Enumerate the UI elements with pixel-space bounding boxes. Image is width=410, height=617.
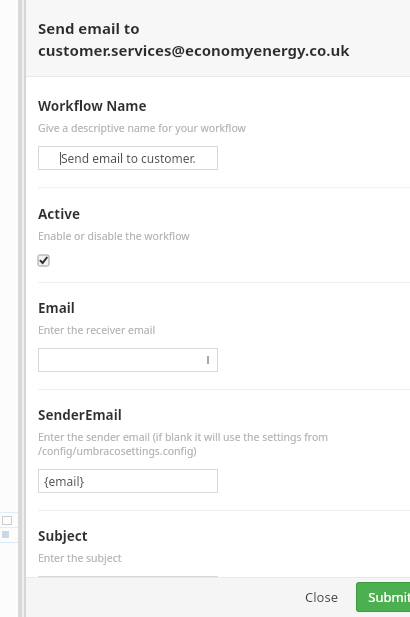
staticText: SenderEmail: [38, 406, 122, 424]
button[interactable]: Send email to customer.: [38, 146, 218, 170]
button[interactable]: Active checkbox: [38, 255, 49, 266]
button[interactable]: Close: [295, 582, 348, 612]
staticText: Send email to customer.: [61, 150, 196, 166]
staticText: Submit: [368, 588, 410, 606]
button[interactable]: {email}: [38, 469, 218, 493]
button[interactable]: [38, 348, 218, 372]
staticText: Enable or disable the workflow: [38, 229, 190, 243]
staticText: Enter the subject: [38, 551, 122, 565]
staticText: Subject: [38, 527, 88, 545]
button[interactable]: Submit: [356, 582, 410, 612]
staticText: customer.services@economyenergy.co.uk: [38, 40, 350, 60]
staticText: Enter the sender email (if blank it will…: [38, 430, 329, 458]
staticText: Workflow Name: [38, 97, 147, 115]
staticText: Enter the receiver email: [38, 323, 156, 337]
staticText: Give a descriptive name for your workflo…: [38, 121, 246, 135]
staticText: Email: [38, 299, 75, 317]
staticText: Active: [38, 205, 80, 223]
staticText: {email}: [44, 473, 85, 489]
staticText: Send email to: [38, 18, 140, 38]
staticText: Close: [305, 588, 338, 606]
